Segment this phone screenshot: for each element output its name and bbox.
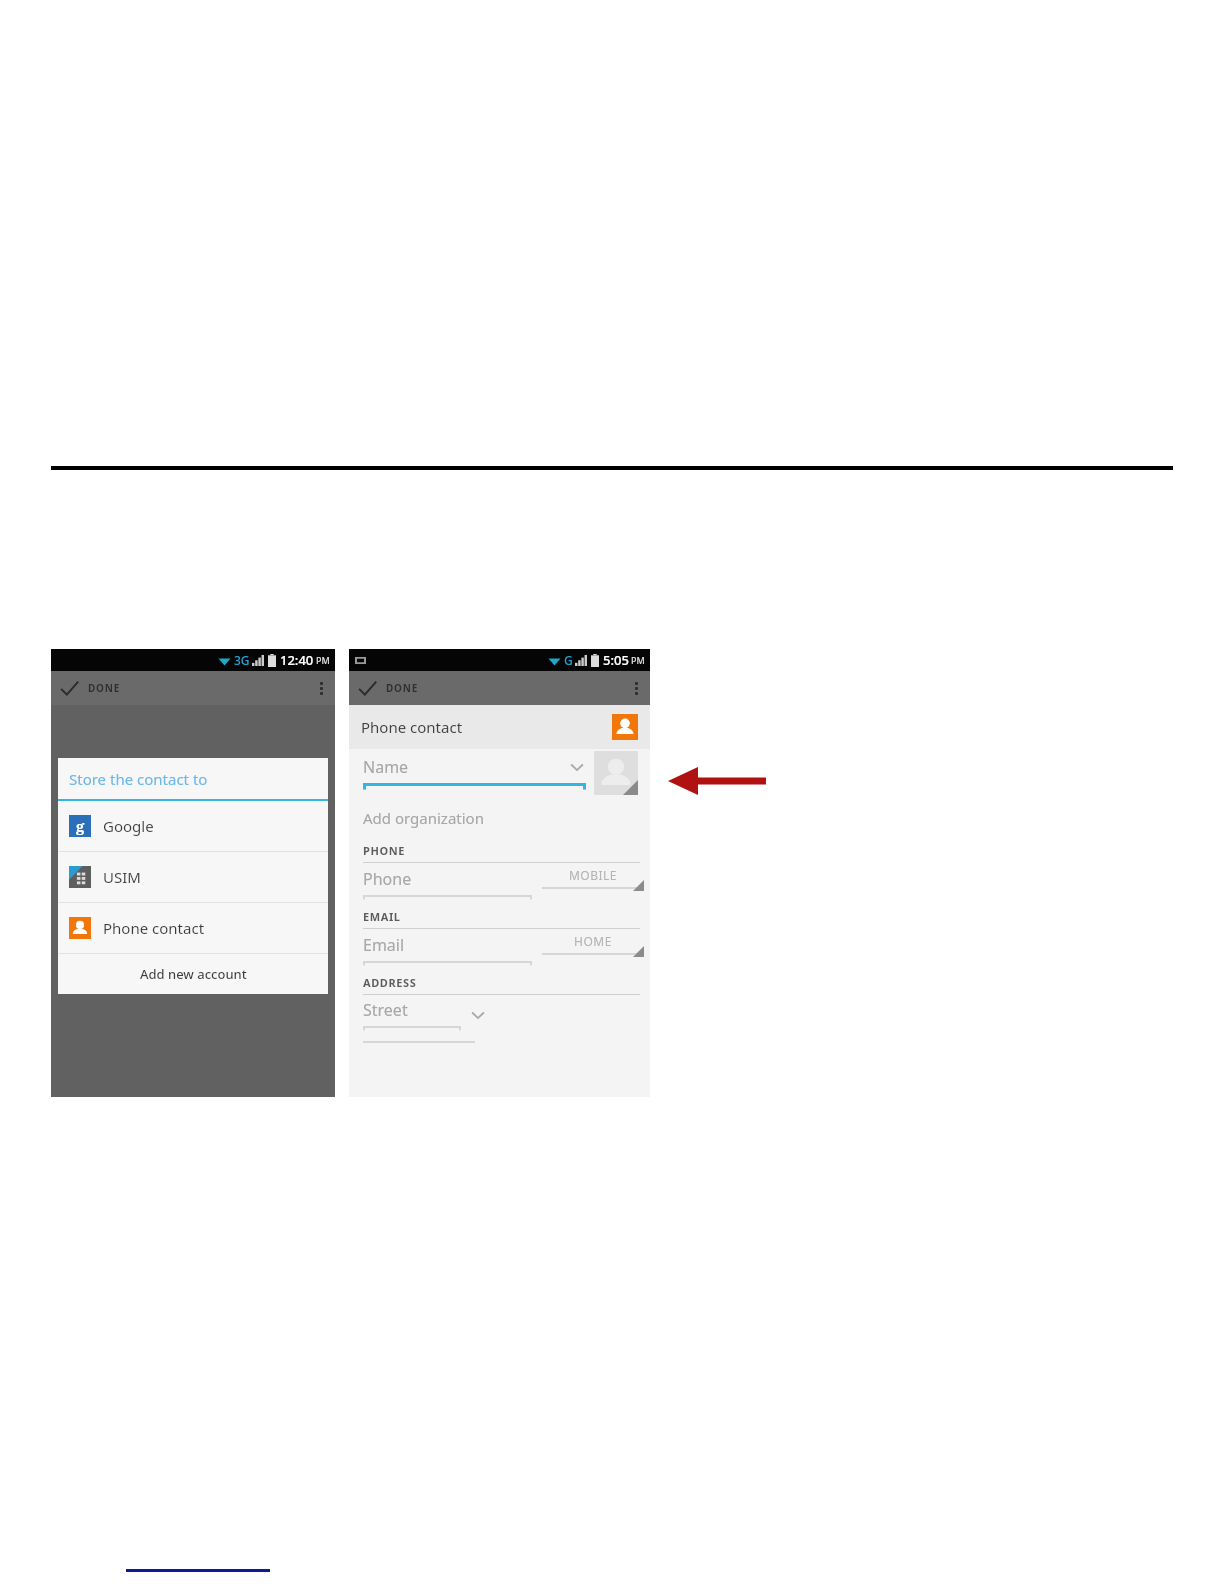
staticText: PHONE <box>363 843 406 858</box>
staticText: DONE <box>386 681 419 695</box>
button[interactable]: More options <box>622 671 650 705</box>
staticText: Email <box>363 934 405 956</box>
staticText: G <box>564 652 573 668</box>
button[interactable]: Expand address fields <box>469 1006 487 1024</box>
button[interactable]: Phone contact <box>349 705 650 749</box>
staticText: Phone contact <box>103 918 205 938</box>
button[interactable]: Add new account <box>58 954 328 994</box>
staticText: MOBILE <box>542 867 644 883</box>
staticText: Phone contact <box>361 717 463 737</box>
button[interactable]: Expand name fields <box>568 758 586 776</box>
staticText: Phone <box>363 868 412 890</box>
button[interactable]: HOME <box>542 929 650 971</box>
staticText: PM <box>316 654 330 666</box>
staticText: Add organization <box>363 808 484 828</box>
staticText: g <box>76 816 85 836</box>
staticText: Name <box>363 756 409 778</box>
button[interactable]: DONE <box>51 671 131 705</box>
button[interactable]: Phone contact <box>58 903 328 953</box>
button[interactable]: DONE <box>349 671 429 705</box>
button[interactable]: More options <box>307 671 335 705</box>
staticText: ADDRESS <box>363 975 417 990</box>
staticText: 5:05 <box>603 651 629 669</box>
button[interactable]: Add organization <box>349 797 650 839</box>
button[interactable]: USIM <box>58 852 328 902</box>
button[interactable]: g <box>58 801 328 851</box>
button[interactable]: Add contact photo <box>594 751 638 795</box>
button[interactable]: MOBILE <box>542 863 650 905</box>
staticText: DONE <box>88 681 121 695</box>
staticText: HOME <box>542 933 644 949</box>
staticText: Street <box>363 999 408 1021</box>
staticText: Google <box>103 816 154 836</box>
staticText: 3G <box>234 652 250 668</box>
staticText: USIM <box>103 867 141 887</box>
staticText: 12:40 <box>280 651 314 669</box>
staticText: PM <box>631 654 645 666</box>
staticText: Store the contact to <box>69 769 208 789</box>
staticText: Add new account <box>140 965 247 983</box>
staticText: EMAIL <box>363 909 401 924</box>
